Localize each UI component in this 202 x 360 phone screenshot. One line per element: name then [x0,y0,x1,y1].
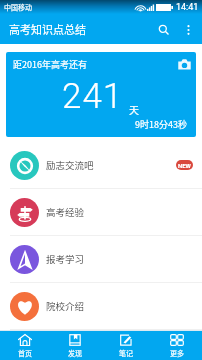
staticText: 首页 [18,348,32,358]
button[interactable]: Camera [174,54,194,74]
button[interactable]: 院校介绍 [0,283,202,329]
staticText: 发现 [68,348,82,358]
button[interactable]: 笔记 [100,331,151,360]
staticText: 距2016年高考还有 [13,58,87,71]
staticText: 中国移动 [4,2,32,12]
staticText: 更多 [170,348,184,358]
button[interactable]: 首页 [0,331,50,360]
staticText: NEW [178,162,191,169]
staticText: 高考知识点总结 [9,21,151,37]
button[interactable]: 距2016年高考还有 [6,52,196,137]
button[interactable]: 更多 [151,331,202,360]
staticText: 高考经验 [46,205,85,219]
button[interactable]: More options [177,18,199,40]
staticText: 励志交流吧 [46,158,94,172]
button[interactable]: 励志交流吧 [0,142,202,188]
staticText: 14:41 [176,2,199,13]
staticText: 院校介绍 [46,299,85,313]
staticText: 报考学习 [46,252,85,266]
button[interactable]: 发现 [50,331,100,360]
staticText: 天 [129,102,139,116]
staticText: 241 [62,76,124,117]
staticText: 9时18分43秒 [135,118,187,131]
staticText: 笔记 [119,348,133,358]
button[interactable]: 报考学习 [0,236,202,282]
button[interactable]: 高考经验 [0,189,202,235]
button[interactable]: Search [151,16,177,42]
